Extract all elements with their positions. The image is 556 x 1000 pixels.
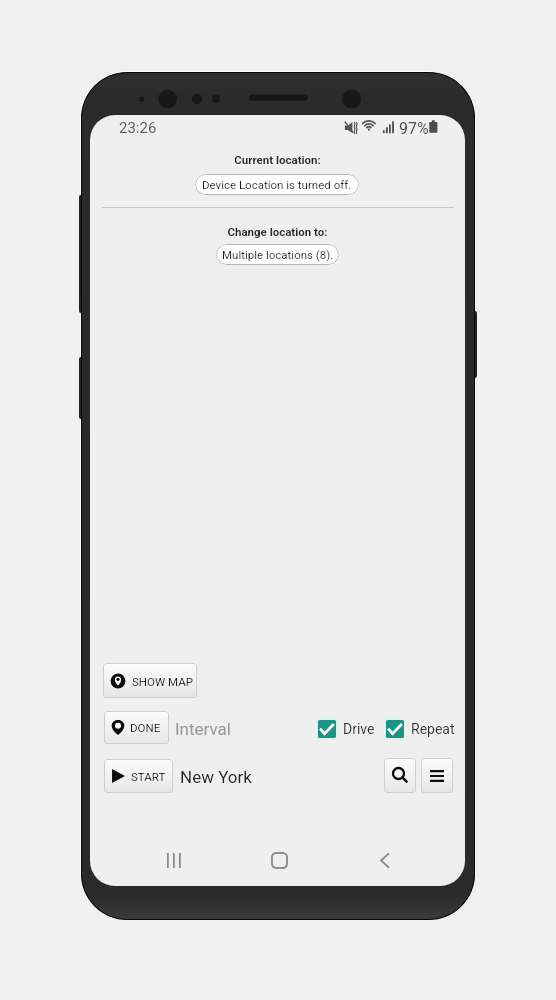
staticText: 97% [399,119,429,138]
button[interactable]: DONE [104,711,169,744]
staticText: DONE [130,721,161,734]
button[interactable]: Home [257,838,301,882]
staticText: Current location: [90,153,465,166]
button[interactable]: Drive [318,720,375,738]
staticText: New York [180,767,252,787]
staticText: SHOW MAP [132,675,193,688]
button[interactable]: Recents [152,838,196,882]
button[interactable]: Repeat [386,720,455,738]
staticText: Repeat [411,721,455,737]
staticText: START [131,770,166,783]
button[interactable]: Menu [421,758,453,793]
staticText: Multiple locations (8). [222,248,334,261]
button[interactable]: Device Location is turned off. [195,174,359,195]
button[interactable]: Search [384,758,416,793]
button[interactable]: Multiple locations (8). [216,244,339,265]
staticText: Change location to: [90,225,465,238]
staticText: Device Location is turned off. [202,178,352,191]
button[interactable]: START [104,759,173,793]
button[interactable]: SHOW MAP [103,663,197,698]
staticText: 23:26 [119,119,157,137]
staticText: Drive [343,721,375,737]
button[interactable]: Back [362,838,406,882]
staticText: Interval [175,719,231,739]
